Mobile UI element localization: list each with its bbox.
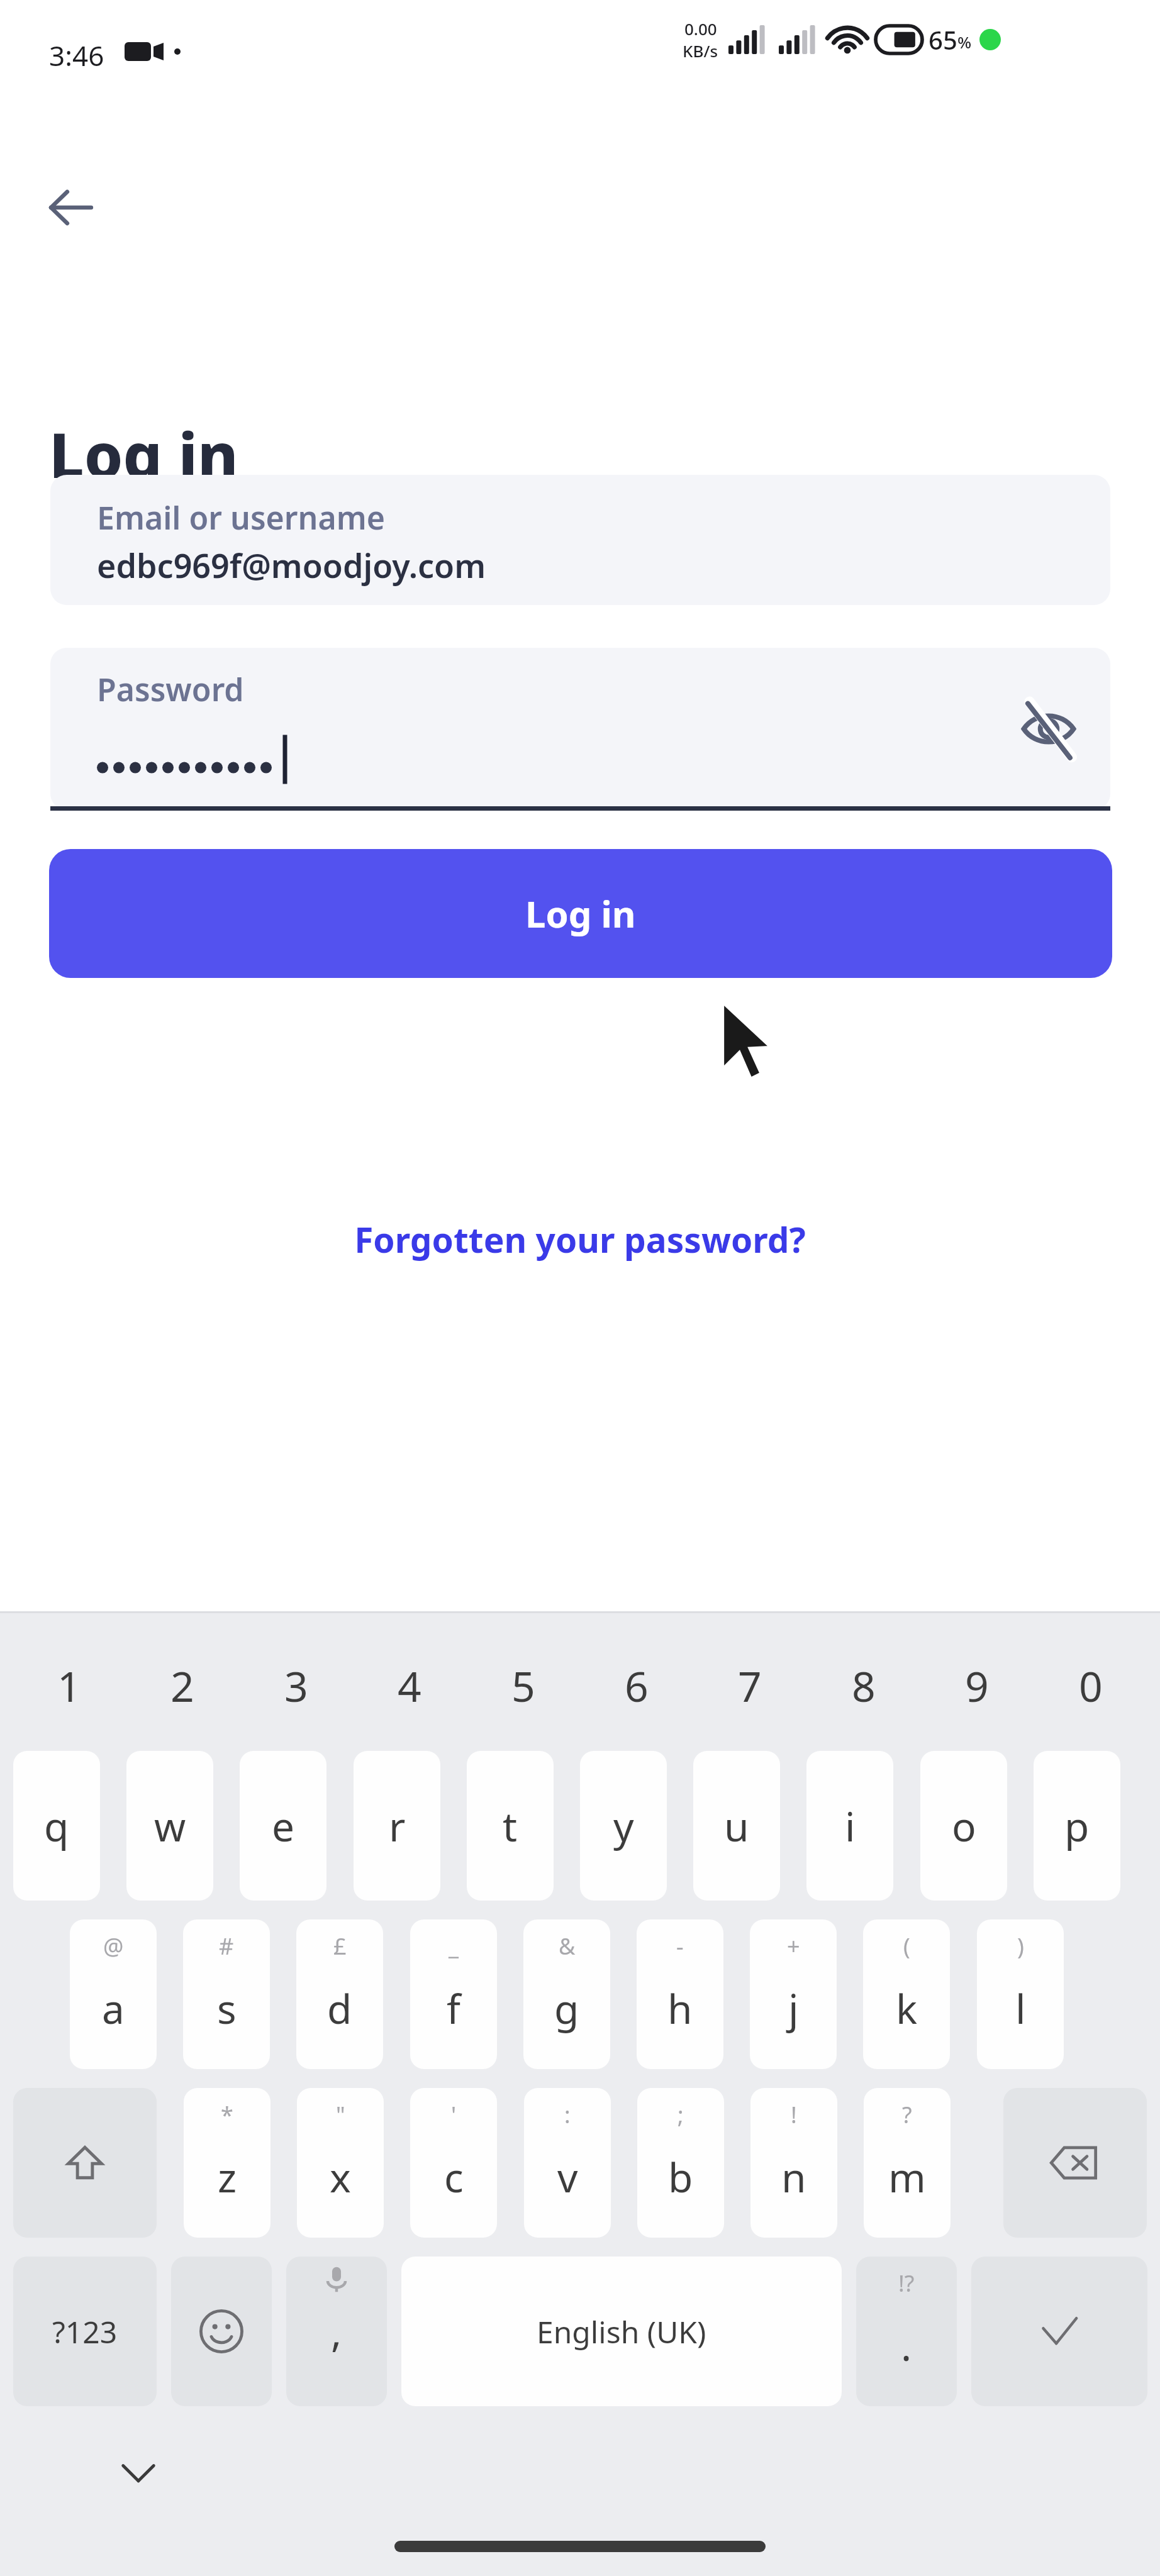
- button[interactable]: ": [297, 2088, 384, 2238]
- staticText: +: [787, 1931, 800, 1962]
- button[interactable]: !?: [856, 2257, 957, 2406]
- button[interactable]: i: [806, 1751, 893, 1901]
- staticText: b: [668, 2150, 693, 2204]
- staticText: t: [503, 1799, 518, 1853]
- staticText: 8: [852, 1657, 876, 1714]
- staticText: j: [788, 1981, 799, 2036]
- staticText: n: [781, 2150, 806, 2204]
- button[interactable]: r: [354, 1751, 440, 1901]
- button[interactable]: _: [410, 1919, 497, 2069]
- button[interactable]: #: [183, 1919, 270, 2069]
- staticText: v: [557, 2150, 578, 2204]
- staticText: 2: [170, 1657, 194, 1714]
- staticText: KB/s: [683, 40, 718, 62]
- staticText: (: [903, 1931, 910, 1962]
- staticText: 65: [929, 23, 957, 57]
- staticText: -: [676, 1931, 684, 1962]
- staticText: 3:46: [49, 36, 104, 74]
- staticText: h: [667, 1981, 693, 2036]
- button[interactable]: @: [70, 1919, 157, 2069]
- button[interactable]: Show password: [1005, 685, 1093, 773]
- button[interactable]: Back: [30, 167, 112, 248]
- staticText: k: [896, 1981, 918, 2036]
- staticText: #: [219, 1931, 234, 1962]
- button[interactable]: 2: [126, 1629, 239, 1742]
- button[interactable]: u: [693, 1751, 780, 1901]
- button[interactable]: +: [750, 1919, 837, 2069]
- staticText: ?123: [52, 2311, 118, 2352]
- staticText: &: [559, 1931, 576, 1962]
- staticText: .: [901, 2318, 912, 2373]
- button[interactable]: Email or username: [50, 475, 1110, 605]
- staticText: !?: [898, 2268, 915, 2299]
- staticText: @: [103, 1931, 124, 1962]
- button[interactable]: ): [977, 1919, 1064, 2069]
- staticText: x: [330, 2150, 351, 2204]
- button[interactable]: Password: [50, 648, 1110, 810]
- staticText: y: [613, 1799, 634, 1853]
- button[interactable]: Shift: [13, 2088, 157, 2238]
- button[interactable]: p: [1034, 1751, 1120, 1901]
- staticText: 7: [738, 1657, 762, 1714]
- button[interactable]: ?: [864, 2088, 951, 2238]
- button[interactable]: 3: [240, 1629, 353, 1742]
- staticText: Log in: [49, 412, 238, 496]
- staticText: c: [444, 2150, 464, 2204]
- staticText: edbc969f@moodjoy.com: [97, 543, 486, 587]
- button[interactable]: Voice input: [286, 2257, 387, 2406]
- staticText: 5: [511, 1657, 535, 1714]
- staticText: 9: [965, 1657, 989, 1714]
- button[interactable]: 7: [693, 1629, 806, 1742]
- staticText: z: [218, 2150, 237, 2204]
- button[interactable]: Emoji: [171, 2257, 272, 2406]
- button[interactable]: o: [920, 1751, 1007, 1901]
- button[interactable]: 0: [1034, 1629, 1147, 1742]
- staticText: ": [336, 2099, 345, 2130]
- staticText: 0.00: [684, 18, 717, 40]
- staticText: p: [1064, 1799, 1090, 1853]
- button[interactable]: Log in: [49, 849, 1112, 978]
- button[interactable]: -: [637, 1919, 723, 2069]
- staticText: Email or username: [97, 496, 385, 539]
- button[interactable]: 5: [467, 1629, 580, 1742]
- button[interactable]: Backspace: [1003, 2088, 1147, 2238]
- button[interactable]: q: [13, 1751, 100, 1901]
- button[interactable]: &: [523, 1919, 610, 2069]
- button[interactable]: *: [184, 2088, 270, 2238]
- button[interactable]: £: [296, 1919, 383, 2069]
- staticText: ,: [331, 2304, 342, 2359]
- button[interactable]: !: [750, 2088, 837, 2238]
- button[interactable]: (: [863, 1919, 950, 2069]
- button[interactable]: Enter: [971, 2257, 1147, 2406]
- button[interactable]: ?123: [13, 2257, 157, 2406]
- button[interactable]: Forgotten your password?: [0, 1204, 1160, 1274]
- staticText: 4: [398, 1657, 421, 1714]
- button[interactable]: e: [240, 1751, 326, 1901]
- staticText: Password: [97, 668, 244, 711]
- staticText: m: [888, 2150, 926, 2204]
- staticText: a: [102, 1981, 125, 2036]
- staticText: ': [451, 2099, 457, 2130]
- button[interactable]: :: [524, 2088, 611, 2238]
- staticText: Forgotten your password?: [354, 1216, 806, 1263]
- staticText: ;: [678, 2099, 684, 2130]
- button[interactable]: w: [126, 1751, 213, 1901]
- button[interactable]: 4: [353, 1629, 466, 1742]
- button[interactable]: 1: [13, 1629, 126, 1742]
- button[interactable]: y: [580, 1751, 667, 1901]
- button[interactable]: 9: [920, 1629, 1034, 1742]
- staticText: s: [217, 1981, 237, 2036]
- button[interactable]: 8: [807, 1629, 920, 1742]
- staticText: d: [327, 1981, 352, 2036]
- staticText: 6: [625, 1657, 649, 1714]
- button[interactable]: t: [467, 1751, 554, 1901]
- button[interactable]: 6: [580, 1629, 693, 1742]
- button[interactable]: Hide keyboard: [94, 2429, 182, 2517]
- staticText: o: [952, 1799, 976, 1853]
- button[interactable]: ;: [637, 2088, 724, 2238]
- staticText: u: [724, 1799, 749, 1853]
- staticText: English (UK): [537, 2311, 706, 2352]
- button[interactable]: English (UK): [401, 2257, 842, 2406]
- button[interactable]: ': [410, 2088, 497, 2238]
- staticText: !: [791, 2099, 797, 2130]
